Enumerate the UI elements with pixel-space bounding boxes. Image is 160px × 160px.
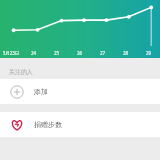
staticText: 25 [45,50,68,56]
staticText: 26 [68,50,91,56]
staticText: 5月23日 [0,50,22,56]
other: 添加 [10,85,24,99]
staticText: 捐赠步数 [34,120,62,129]
other: 捐赠步数 [10,118,24,132]
staticText: 29 [137,50,160,56]
staticText: 24 [22,50,45,56]
button[interactable]: 添加 [0,79,160,104]
staticText: 27 [91,50,114,56]
staticText: 添加 [34,87,48,96]
staticText: 28 [114,50,137,56]
button[interactable]: 捐赠步数 [0,112,160,137]
staticText: 关注的人 [9,68,33,76]
button[interactable]: 5月23日 [0,0,160,58]
